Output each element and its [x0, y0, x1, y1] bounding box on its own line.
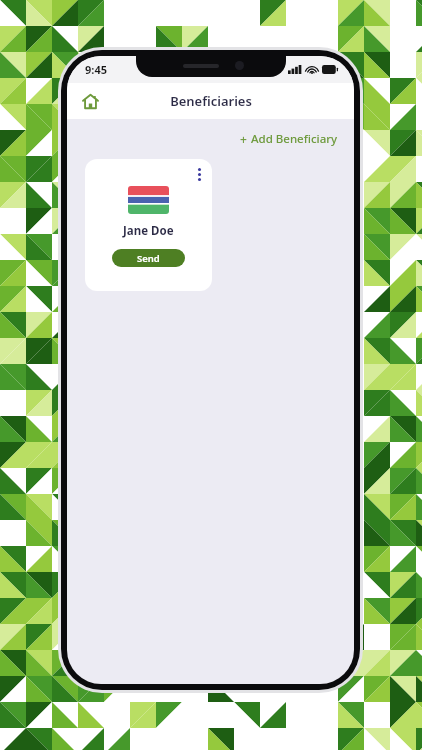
button[interactable]: More options — [192, 165, 206, 183]
button[interactable]: Home — [75, 86, 105, 116]
staticText: Beneficiaries — [170, 92, 252, 110]
staticText: Add Beneficiary — [251, 131, 338, 147]
staticText: 9:45 — [85, 62, 107, 77]
staticText: Send — [137, 252, 160, 265]
button[interactable]: Send — [112, 249, 185, 267]
staticText: + — [240, 131, 247, 147]
button[interactable]: + — [236, 127, 342, 151]
button[interactable]: More options — [85, 159, 212, 291]
staticText: Jane Doe — [123, 223, 174, 239]
